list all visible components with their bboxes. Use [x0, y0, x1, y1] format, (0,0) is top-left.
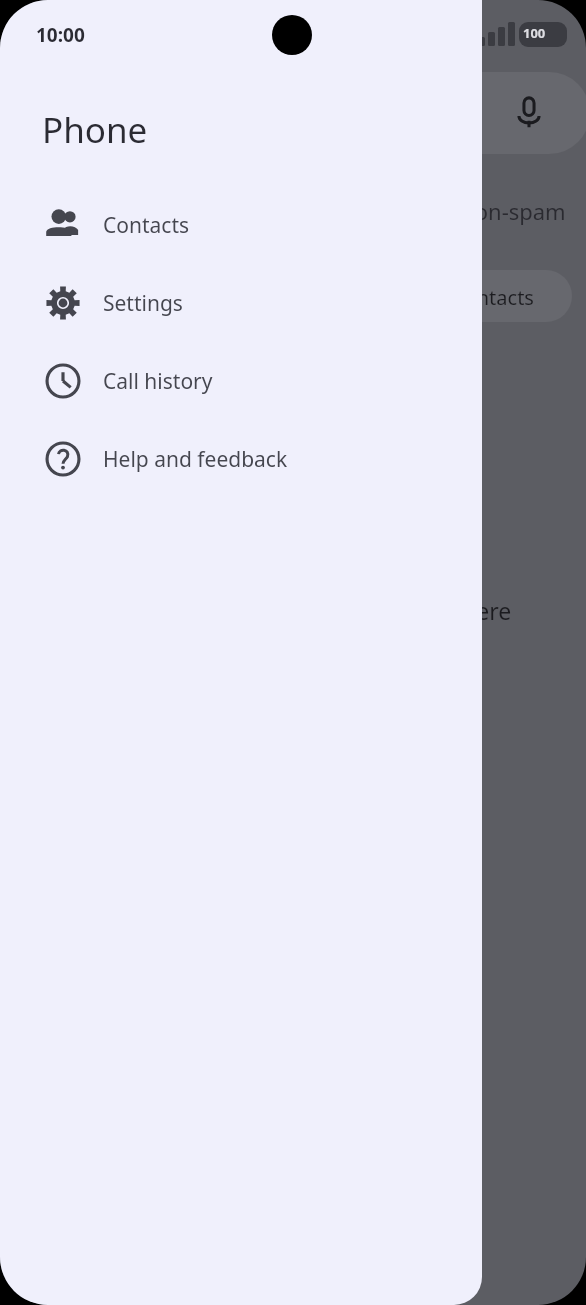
staticText: Phone — [42, 106, 148, 154]
button[interactable] — [330, 270, 572, 322]
staticText: Help and feedback — [103, 445, 288, 474]
button[interactable]: Contacts — [0, 186, 482, 264]
button[interactable]: Settings — [0, 264, 482, 342]
button[interactable]: Help and feedback — [0, 420, 482, 498]
button[interactable]: Call history — [0, 342, 482, 420]
staticText: here — [462, 595, 512, 626]
staticText: Non-spam — [458, 196, 566, 226]
staticText: Contacts — [103, 211, 190, 240]
staticText: Settings — [103, 289, 183, 318]
staticText: 100 — [523, 24, 546, 42]
staticText: Call history — [103, 367, 213, 396]
staticText: 10:00 — [36, 22, 85, 48]
staticText: Contacts — [452, 284, 534, 311]
other: Voice search — [508, 92, 550, 134]
button[interactable]: Search — [300, 72, 586, 154]
